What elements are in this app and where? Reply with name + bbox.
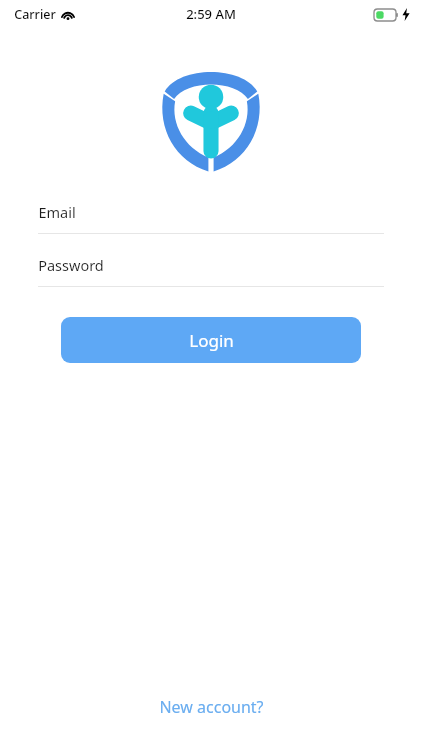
staticText: 2:59 AM [186,5,236,23]
staticText: New account? [159,696,264,718]
button[interactable]: Password [38,255,384,287]
staticText: Login [189,329,234,352]
staticText: Password [38,255,104,275]
button[interactable]: Email [38,202,384,234]
button[interactable]: New account? [0,686,422,728]
staticText: Carrier [14,6,56,23]
staticText: Email [38,202,76,222]
button[interactable]: Login [61,317,361,363]
